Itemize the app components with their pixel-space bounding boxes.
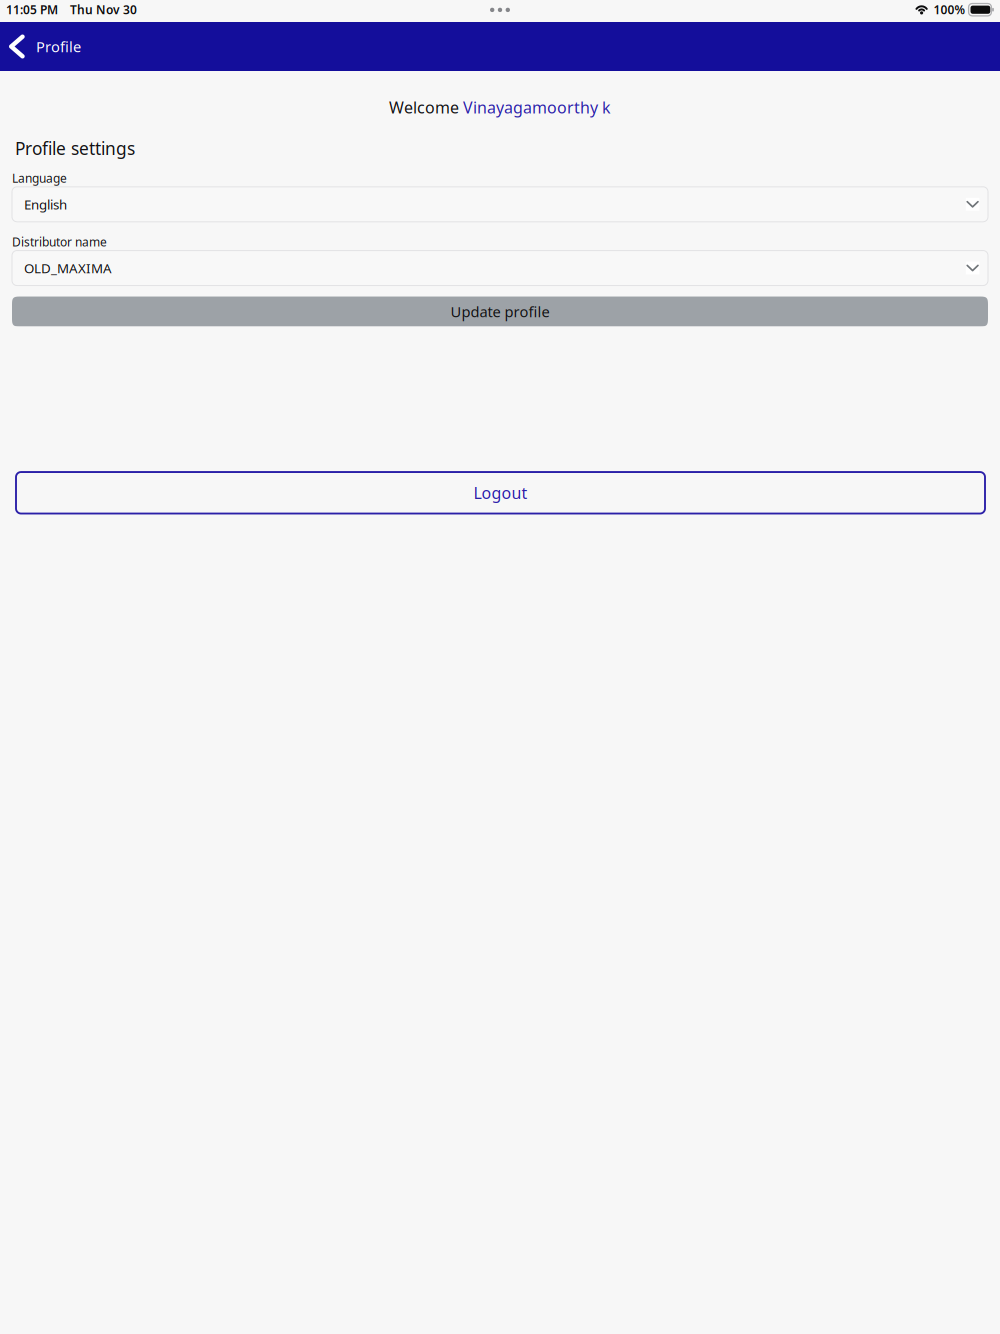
staticText: OLD_MAXIMA <box>24 259 112 277</box>
staticText: Thu Nov 30 <box>70 2 137 18</box>
staticText: Profile <box>36 37 81 56</box>
button[interactable]: OLD_MAXIMA <box>12 250 988 285</box>
staticText: Profile settings <box>15 137 135 160</box>
staticText: English <box>24 195 67 213</box>
staticText: Welcome <box>389 97 463 118</box>
staticText: 11:05 PM <box>6 2 58 18</box>
staticText: 100% <box>934 2 966 18</box>
button[interactable]: English <box>12 187 988 222</box>
button[interactable]: Back <box>0 22 81 71</box>
button[interactable]: Update profile <box>12 296 988 326</box>
staticText: Language <box>12 170 67 186</box>
staticText: Vinayagamoorthy k <box>463 97 611 118</box>
button[interactable]: Logout <box>16 472 985 513</box>
staticText: Distributor name <box>12 234 107 250</box>
staticText: Update profile <box>450 302 549 321</box>
staticText: Logout <box>473 482 527 503</box>
